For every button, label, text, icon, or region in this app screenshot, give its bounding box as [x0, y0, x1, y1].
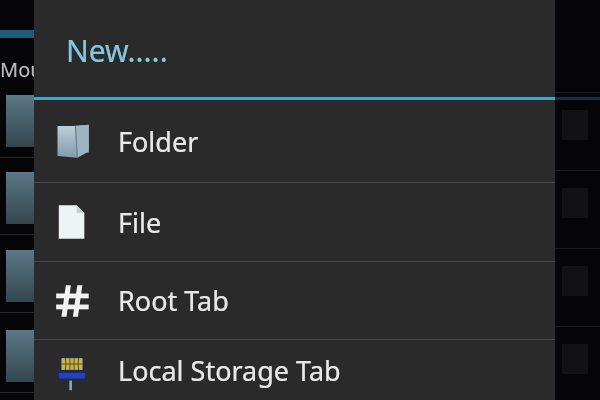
other: File: [50, 200, 94, 244]
button[interactable]: Local Storage Tab: [34, 340, 555, 400]
staticText: Mou: [0, 56, 43, 83]
staticText: Local Storage Tab: [118, 352, 341, 389]
staticText: Folder: [118, 123, 199, 160]
button[interactable]: Folder: [34, 100, 555, 182]
staticText: File: [118, 204, 162, 241]
button[interactable]: File: [34, 183, 555, 261]
other: Root Tab: [50, 279, 94, 323]
other: Local Storage Tab: [50, 348, 94, 392]
other: Folder: [50, 119, 94, 163]
staticText: New.....: [66, 30, 168, 71]
staticText: Root Tab: [118, 282, 229, 319]
button[interactable]: Root Tab: [34, 262, 555, 339]
